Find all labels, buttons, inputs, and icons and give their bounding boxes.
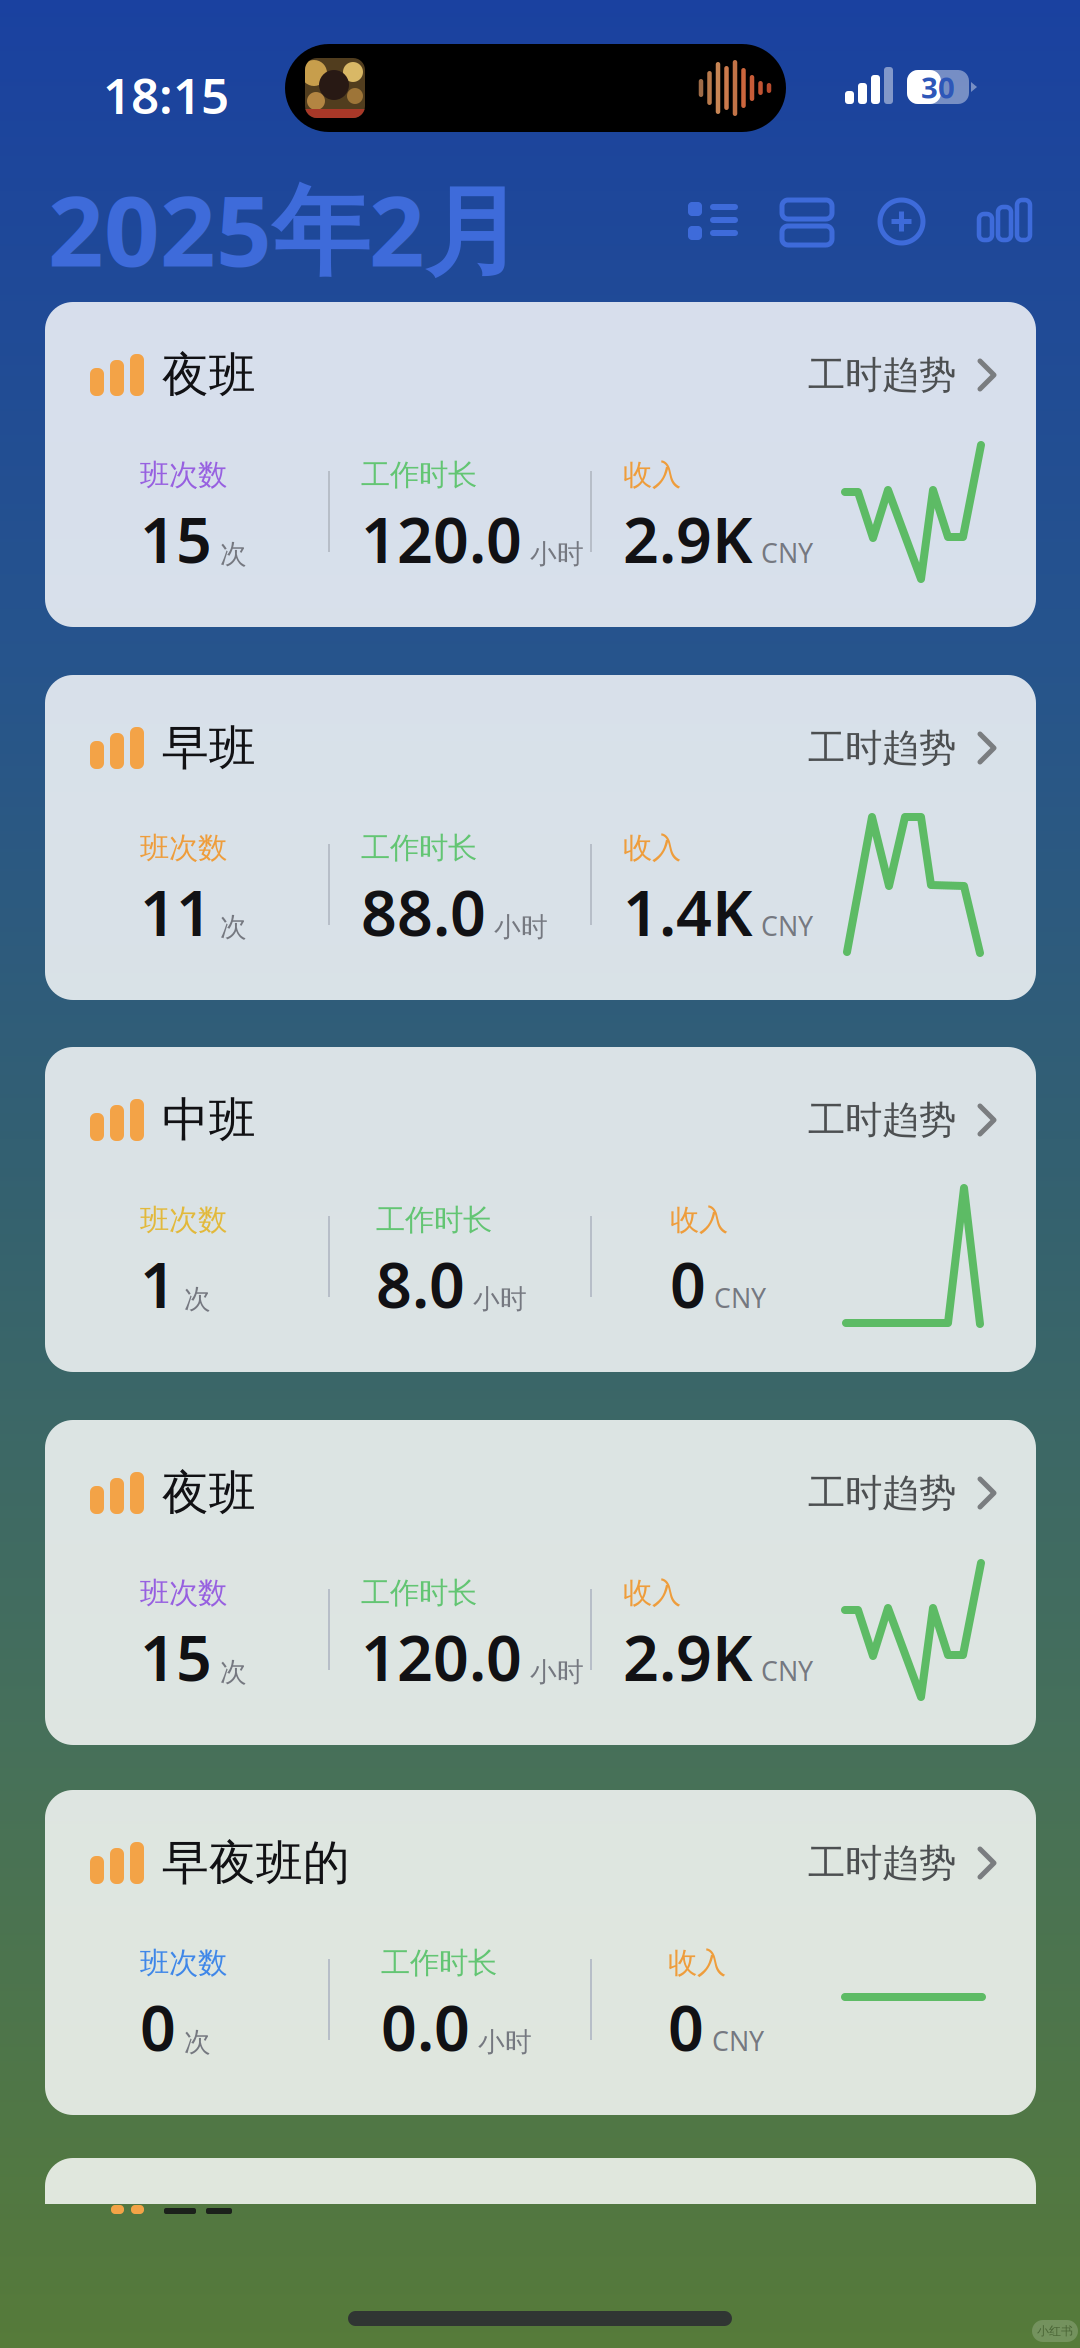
- staticText: 1: [140, 1242, 176, 1325]
- button[interactable]: [688, 200, 738, 244]
- staticText: 工作时长: [361, 457, 477, 493]
- staticText: 早夜班的: [162, 1834, 350, 1892]
- staticText: 次: [220, 538, 247, 570]
- staticText: 0: [670, 1242, 706, 1325]
- staticText: 次: [220, 911, 247, 943]
- button[interactable]: [45, 2158, 1036, 2248]
- button[interactable]: 早夜班的: [45, 1790, 1036, 2115]
- staticText: 工时趋势: [808, 1470, 956, 1516]
- staticText: CNY: [761, 1653, 813, 1688]
- staticText: 工时趋势: [808, 1097, 956, 1143]
- staticText: 工时趋势: [808, 352, 956, 398]
- button[interactable]: 早班: [45, 675, 1036, 1000]
- staticText: 班次数: [140, 457, 227, 493]
- staticText: 工时趋势: [808, 1840, 956, 1886]
- staticText: CNY: [712, 2023, 764, 2058]
- button[interactable]: 中班: [45, 1047, 1036, 1372]
- staticText: 30: [921, 67, 955, 106]
- staticText: 班次数: [140, 830, 227, 866]
- staticText: 次: [184, 2026, 211, 2058]
- staticText: 收入: [623, 457, 681, 493]
- staticText: 0: [668, 1985, 704, 2068]
- staticText: 2025年2月: [48, 164, 522, 293]
- staticText: 工作时长: [361, 1575, 477, 1611]
- staticText: 收入: [623, 830, 681, 866]
- staticText: 8.0: [376, 1242, 465, 1325]
- staticText: 0: [140, 1985, 176, 2068]
- staticText: CNY: [761, 535, 813, 570]
- staticText: 班次数: [140, 1202, 227, 1238]
- staticText: 中班: [162, 1091, 256, 1149]
- staticText: 收入: [670, 1202, 728, 1238]
- staticText: 夜班: [162, 1464, 256, 1522]
- staticText: 次: [184, 1283, 211, 1315]
- staticText: 0.0: [381, 1985, 470, 2068]
- staticText: 班次数: [140, 1575, 227, 1611]
- staticText: 工作时长: [376, 1202, 492, 1238]
- staticText: 2.9K: [623, 497, 753, 580]
- staticText: 早班: [162, 719, 256, 777]
- staticText: 120.0: [361, 497, 522, 580]
- staticText: 收入: [668, 1945, 726, 1981]
- button[interactable]: [880, 200, 923, 243]
- staticText: 收入: [623, 1575, 681, 1611]
- staticText: 工作时长: [381, 1945, 497, 1981]
- button[interactable]: 夜班: [45, 1420, 1036, 1745]
- staticText: CNY: [714, 1280, 766, 1315]
- staticText: 11: [140, 870, 212, 953]
- staticText: 小时: [494, 911, 548, 943]
- button[interactable]: [979, 200, 1030, 240]
- staticText: 15: [140, 497, 212, 580]
- staticText: 15: [140, 1615, 212, 1698]
- staticText: CNY: [761, 908, 813, 943]
- staticText: 班次数: [140, 1945, 227, 1981]
- staticText: 工作时长: [361, 830, 477, 866]
- staticText: 2.9K: [623, 1615, 753, 1698]
- staticText: 1.4K: [623, 870, 753, 953]
- staticText: 88.0: [361, 870, 486, 953]
- staticText: 小时: [478, 2026, 532, 2058]
- staticText: 夜班: [162, 346, 256, 404]
- button[interactable]: [782, 200, 832, 245]
- staticText: 小时: [473, 1283, 527, 1315]
- staticText: 18:15: [103, 62, 229, 127]
- button[interactable]: 夜班: [45, 302, 1036, 627]
- staticText: 120.0: [361, 1615, 522, 1698]
- staticText: 次: [220, 1656, 247, 1688]
- staticText: 小时: [530, 1656, 584, 1688]
- staticText: 小红书: [1037, 2324, 1073, 2338]
- staticText: 小时: [530, 538, 584, 570]
- staticText: 工时趋势: [808, 725, 956, 771]
